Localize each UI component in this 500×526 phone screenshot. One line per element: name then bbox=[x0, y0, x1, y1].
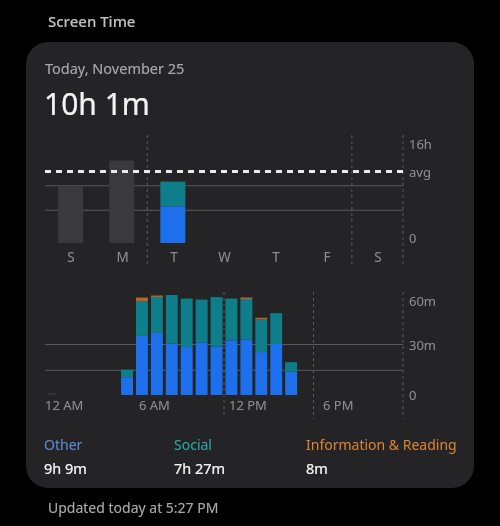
button[interactable]: Other bbox=[44, 435, 174, 478]
staticText: 8m bbox=[306, 458, 328, 478]
staticText: Information & Reading bbox=[306, 435, 457, 454]
staticText: 6 PM bbox=[323, 396, 354, 414]
button[interactable]: Information & Reading bbox=[306, 435, 462, 478]
staticText: 6 AM bbox=[139, 396, 170, 414]
staticText: 12 PM bbox=[229, 396, 267, 414]
staticText: Social bbox=[174, 435, 212, 454]
staticText: 0 bbox=[409, 229, 417, 247]
staticText: F bbox=[323, 248, 331, 266]
staticText: 16h bbox=[409, 135, 432, 153]
button[interactable]: Today, November 25 bbox=[26, 42, 474, 488]
staticText: 7h 27m bbox=[174, 458, 226, 478]
staticText: W bbox=[218, 248, 231, 266]
staticText: 0 bbox=[409, 386, 417, 404]
staticText: T bbox=[272, 248, 280, 266]
staticText: avg bbox=[409, 163, 431, 181]
staticText: Updated today at 5:27 PM bbox=[48, 498, 219, 517]
staticText: 60m bbox=[409, 292, 437, 310]
staticText: Screen Time bbox=[48, 11, 136, 31]
staticText: Today, November 25 bbox=[45, 58, 185, 78]
staticText: M bbox=[116, 248, 129, 266]
staticText: S bbox=[67, 248, 75, 266]
staticText: Other bbox=[44, 435, 83, 454]
staticText: 12 AM bbox=[45, 396, 84, 414]
staticText: 10h 1m bbox=[44, 83, 150, 124]
staticText: T bbox=[170, 248, 178, 266]
staticText: 9h 9m bbox=[44, 458, 87, 478]
button[interactable]: Social bbox=[174, 435, 306, 478]
staticText: 30m bbox=[409, 336, 437, 354]
staticText: S bbox=[374, 248, 382, 266]
